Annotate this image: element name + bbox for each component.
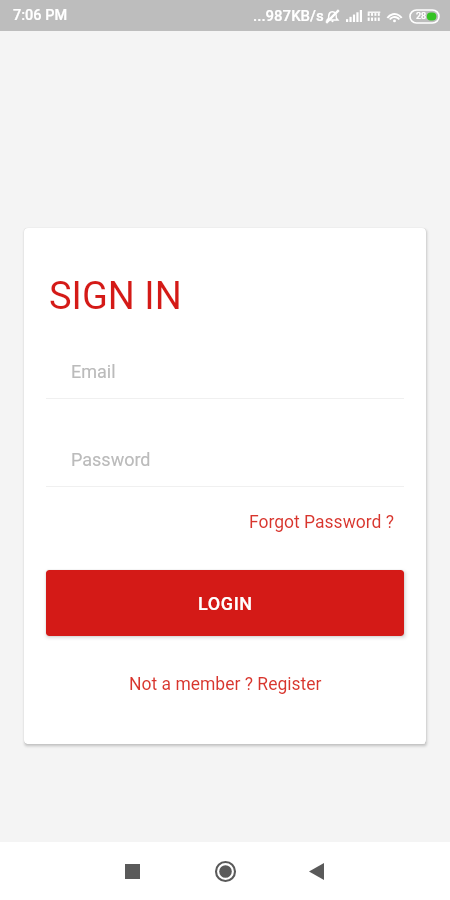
button[interactable]: Forgot Password ? (249, 512, 426, 533)
staticText: SIGN IN (49, 274, 182, 319)
staticText: 7:06 PM (13, 7, 68, 24)
staticText: Password (71, 449, 151, 470)
staticText: LOGIN (198, 593, 253, 614)
staticText: Email (71, 361, 116, 382)
button[interactable]: LOGIN (46, 570, 404, 636)
button[interactable]: Back (287, 842, 345, 900)
staticText: ...987KB/s (253, 7, 324, 25)
staticText: 28 (416, 11, 427, 22)
button[interactable]: Home (196, 842, 254, 900)
button[interactable]: Not a member ? Register (125, 670, 326, 699)
button[interactable]: Recent apps (103, 842, 161, 900)
